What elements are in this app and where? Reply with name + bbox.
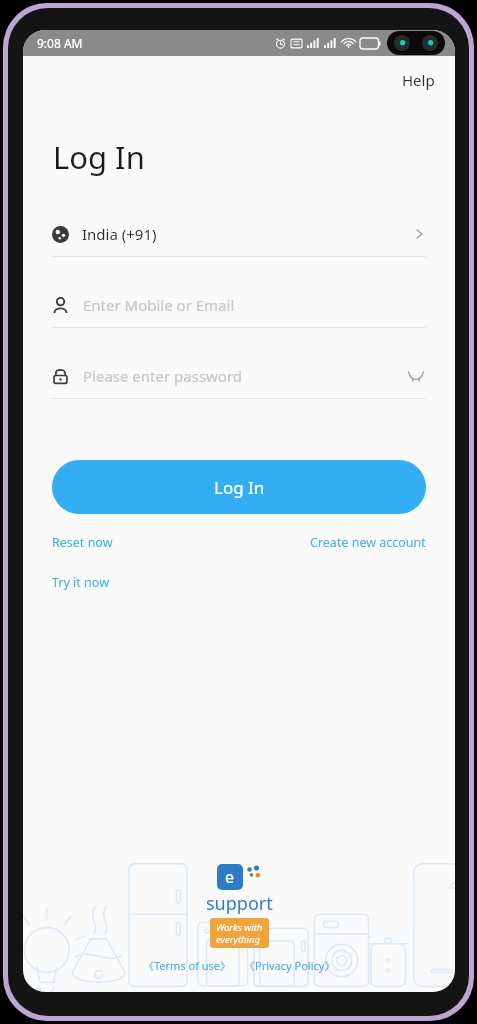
staticText: India (+91) bbox=[82, 224, 157, 244]
staticText: 9:08 AM bbox=[37, 35, 83, 51]
button[interactable]: 《Privacy Policy》 bbox=[241, 955, 339, 976]
staticText: Enter Mobile or Email bbox=[83, 295, 235, 315]
staticText: Create new account bbox=[310, 534, 426, 551]
button[interactable]: India (+91) bbox=[23, 212, 455, 256]
staticText: Try it now bbox=[52, 574, 109, 591]
staticText: Help bbox=[402, 70, 435, 90]
staticText: 《Privacy Policy》 bbox=[244, 958, 336, 973]
staticText: 《Terms of use》 bbox=[143, 958, 232, 973]
staticText: Log In bbox=[53, 136, 145, 178]
staticText: Works with everything bbox=[216, 921, 263, 945]
button[interactable]: Reset now bbox=[52, 528, 113, 557]
staticText: Log In bbox=[214, 476, 265, 499]
button[interactable]: 《Terms of use》 bbox=[140, 955, 235, 976]
staticText: Please enter password bbox=[83, 366, 243, 386]
button[interactable]: Show password bbox=[406, 366, 426, 386]
button[interactable]: Enter Mobile or Email bbox=[23, 283, 455, 327]
button[interactable]: Help bbox=[382, 56, 455, 104]
button[interactable]: Try it now bbox=[52, 570, 109, 595]
button[interactable]: Log In bbox=[52, 460, 426, 514]
button[interactable]: Please enter password bbox=[23, 354, 455, 398]
staticText: support bbox=[206, 891, 273, 916]
staticText: Reset now bbox=[52, 534, 113, 551]
staticText: e bbox=[225, 866, 235, 888]
button[interactable]: Create new account bbox=[310, 528, 426, 557]
